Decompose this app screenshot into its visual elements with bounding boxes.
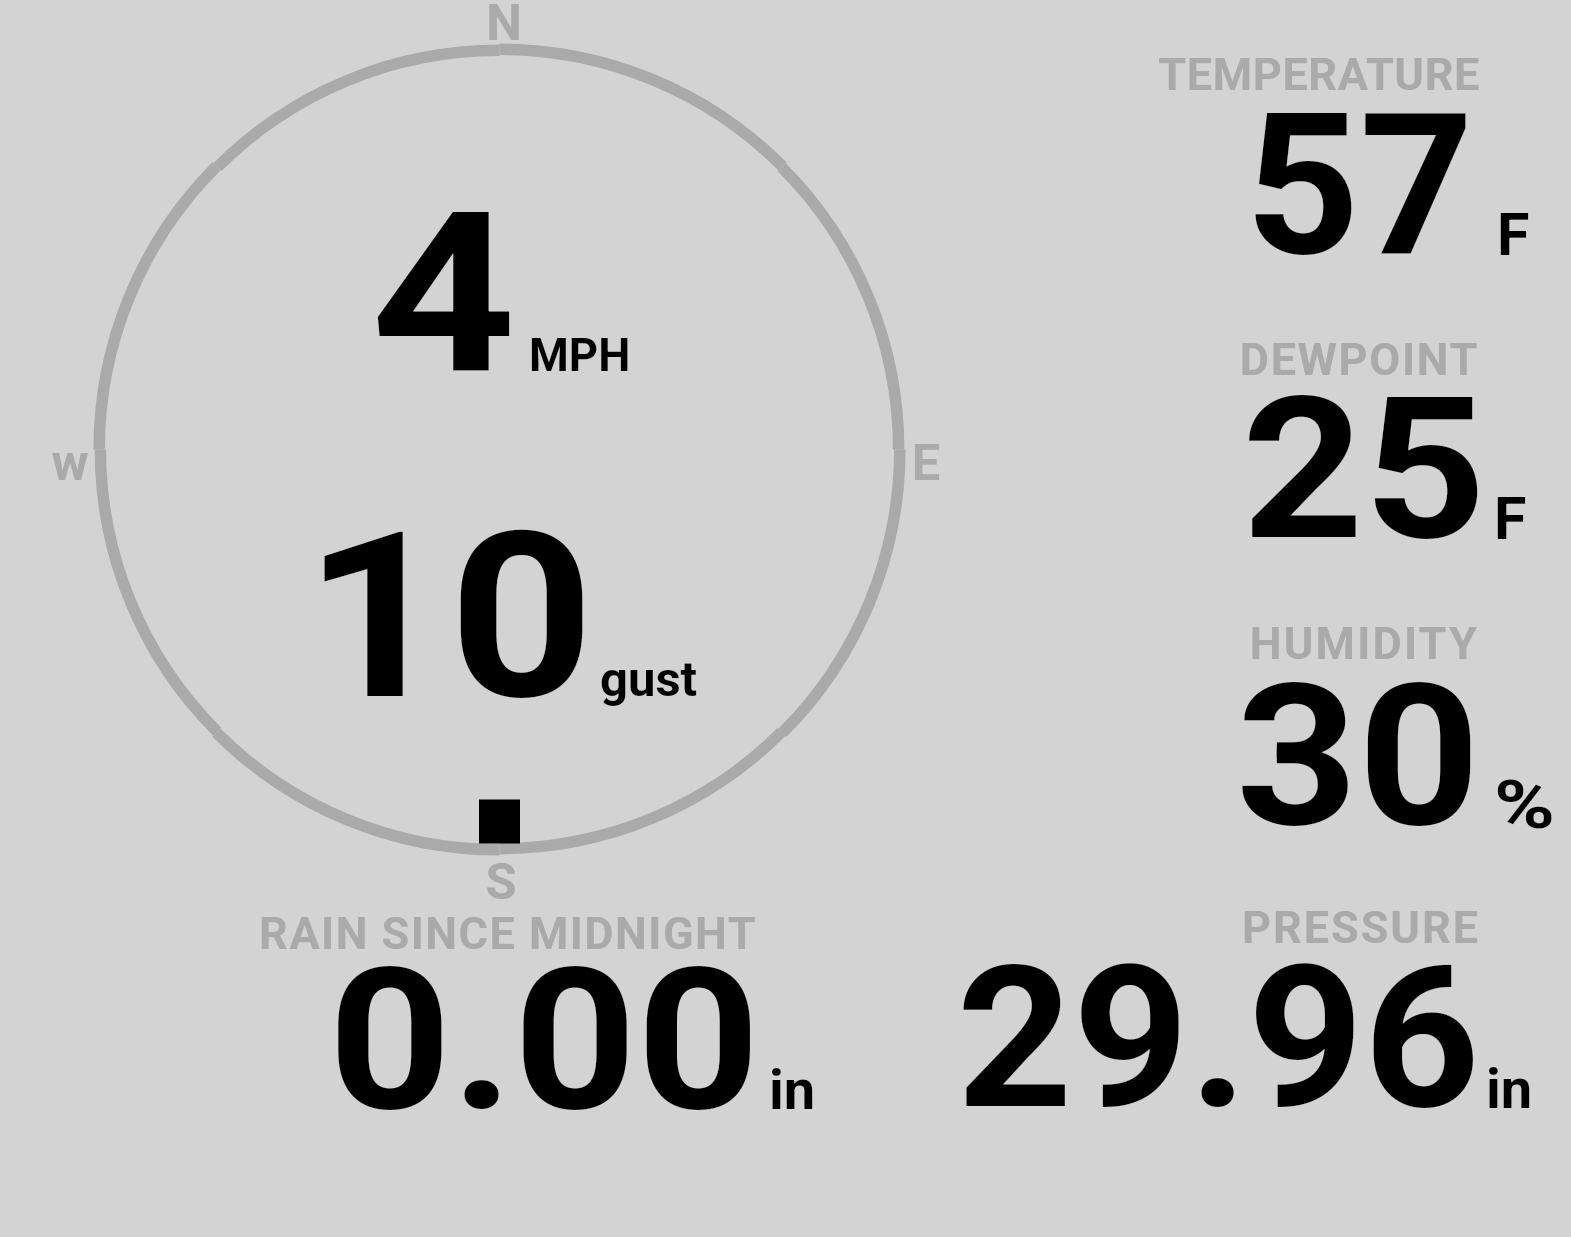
button[interactable]: HUMIDITY 30 % [1000,589,1571,854]
staticText: % [1494,767,1555,844]
staticText: F [1497,200,1530,269]
other: Wind direction compass [0,0,1571,1237]
staticText: E [836,433,1016,1237]
staticText: PRESSURE [480,901,1480,1237]
staticText: RAIN SINCE MIDNIGHT [0,907,757,1237]
staticText: 25 [622,354,1486,1237]
button[interactable]: PRESSURE 29.96 in [910,873,1571,1143]
staticText: F [1494,484,1527,553]
staticText: 4 [0,165,516,1237]
staticText: DEWPOINT [479,333,1479,1237]
staticText: S [411,852,591,1237]
button[interactable]: RAIN SINCE MIDNIGHT 0.00 in [230,879,850,1143]
staticText: gust [600,651,698,708]
button[interactable]: DEWPOINT 25 F [1000,305,1571,570]
button[interactable]: Wind 4 MPH gusting 10, direction south [10,0,990,900]
staticText: 29.96 [658,923,1480,1237]
staticText: in [1486,1056,1533,1122]
staticText: HUMIDITY [479,617,1479,1237]
staticText: TEMPERATURE [480,48,1480,1237]
staticText: w [0,433,160,1237]
staticText: 0.00 [0,925,760,1237]
staticText: 10 [0,482,594,1237]
staticText: in [769,1057,816,1123]
staticText: 57 [664,70,1474,1237]
staticText: MPH [529,329,631,382]
staticText: N [414,0,594,1230]
button[interactable]: TEMPERATURE 57 F [1000,20,1571,285]
staticText: 30 [616,641,1480,1237]
